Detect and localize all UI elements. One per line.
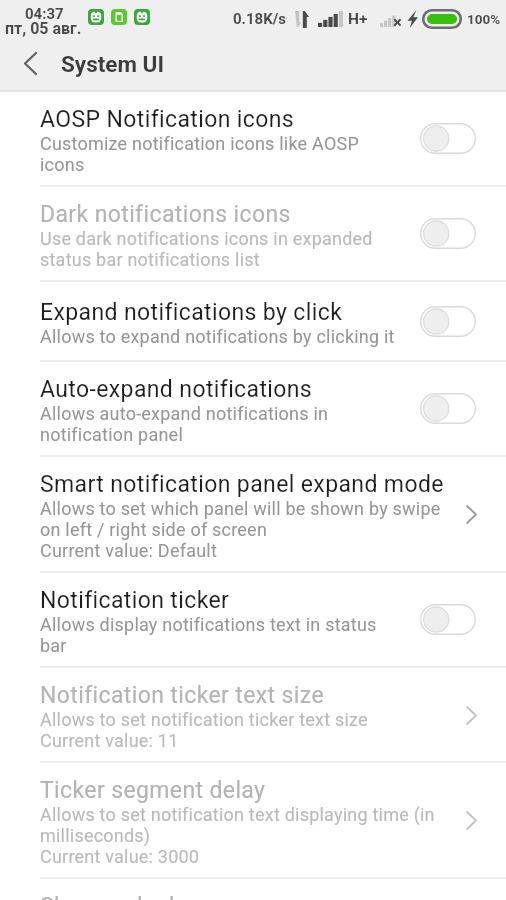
button[interactable]: AOSP Notification icons [0,92,506,187]
staticText: 04:37 [25,5,64,23]
staticText: 0.18K/s [233,10,286,28]
button[interactable]: Toggle [420,218,476,249]
staticText: Current value: Default [40,540,217,561]
button[interactable]: Show on lock screen [0,879,506,900]
button[interactable]: Notification ticker [0,573,506,668]
button[interactable]: Open [459,499,483,529]
button[interactable]: Open [459,700,483,730]
staticText: Allows auto-expand notifications in noti… [40,403,398,445]
staticText: Ticker segment delay [40,773,266,804]
button[interactable]: Toggle [420,123,476,154]
button[interactable]: Notification ticker text size [0,668,506,763]
staticText: Use dark notifications icons in expanded… [40,228,398,270]
button[interactable]: Toggle [420,393,476,424]
button[interactable]: Dark notifications icons [0,187,506,282]
button[interactable]: Ticker segment delay [0,763,506,879]
button[interactable]: Toggle [420,306,476,337]
button[interactable]: Auto-expand notifications [0,362,506,457]
staticText: Dark notifications icons [40,197,291,228]
staticText: System UI [61,51,164,77]
button[interactable]: Toggle [420,604,476,635]
button[interactable]: Smart notification panel expand mode [0,457,506,573]
staticText: Expand notifications by click [40,295,343,326]
staticText: Allows to set which panel will be shown … [40,498,450,540]
staticText: H+ [348,10,368,28]
staticText: Notification ticker [40,583,230,614]
staticText: Allows display notifications text in sta… [40,614,398,656]
staticText: Current value: 3000 [40,846,200,867]
staticText: Customize notification icons like AOSP i… [40,133,398,175]
staticText: Smart notification panel expand mode [40,467,444,498]
staticText: Allows to set notification ticker text s… [40,709,368,730]
staticText: Show on lock screen [40,889,258,900]
staticText: Auto-expand notifications [40,372,313,403]
button[interactable]: Expand notifications by click [0,282,506,362]
staticText: Current value: 11 [40,730,179,751]
staticText: 100% [467,11,501,27]
button[interactable]: Open [459,805,483,835]
staticText: Notification ticker text size [40,678,324,709]
staticText: пт, 05 авг. [5,19,82,38]
staticText: Allows to expand notifications by clicki… [40,326,395,347]
button[interactable]: Back [0,37,52,90]
staticText: Allows to set notification text displayi… [40,804,450,846]
staticText: AOSP Notification icons [40,102,295,133]
